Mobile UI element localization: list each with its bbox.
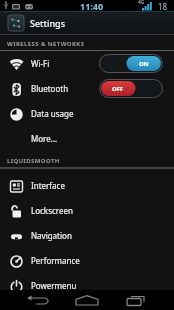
button[interactable]: Lockscreen [0,198,174,223]
staticText: LIQUIDSMOOTH [7,157,60,165]
staticText: Interface [31,180,65,191]
button[interactable]: Bluetooth [0,76,174,101]
button[interactable]: Wi-Fi [0,51,174,76]
button[interactable]: Navigation [0,223,174,248]
staticText: Powermenu [31,280,77,291]
staticText: Wi-Fi [31,58,50,69]
staticText: Performance [31,255,80,266]
button[interactable]: More… [0,126,174,151]
button[interactable] [14,290,62,310]
staticText: Settings [30,17,66,29]
button[interactable]: Settings [0,12,174,34]
staticText: 4G [138,0,145,6]
staticText: Lockscreen [31,205,73,216]
button[interactable]: ON [99,54,163,73]
staticText: ON [139,60,149,68]
staticText: 18 [158,1,168,12]
staticText: Data usage [31,108,74,119]
button[interactable]: Data usage [0,101,174,126]
button[interactable] [111,290,160,310]
staticText: Navigation [31,230,72,241]
staticText: Bluetooth [31,83,69,94]
button[interactable]: Powermenu [0,273,174,298]
button[interactable]: OFF [99,79,163,98]
button[interactable] [62,290,111,310]
staticText: More… [31,133,58,144]
button[interactable]: Interface [0,173,174,198]
button[interactable]: Performance [0,248,174,273]
staticText: WIRELESS & NETWORKS [7,40,85,48]
staticText: 11:40 [80,0,104,12]
staticText: OFF [112,85,124,93]
